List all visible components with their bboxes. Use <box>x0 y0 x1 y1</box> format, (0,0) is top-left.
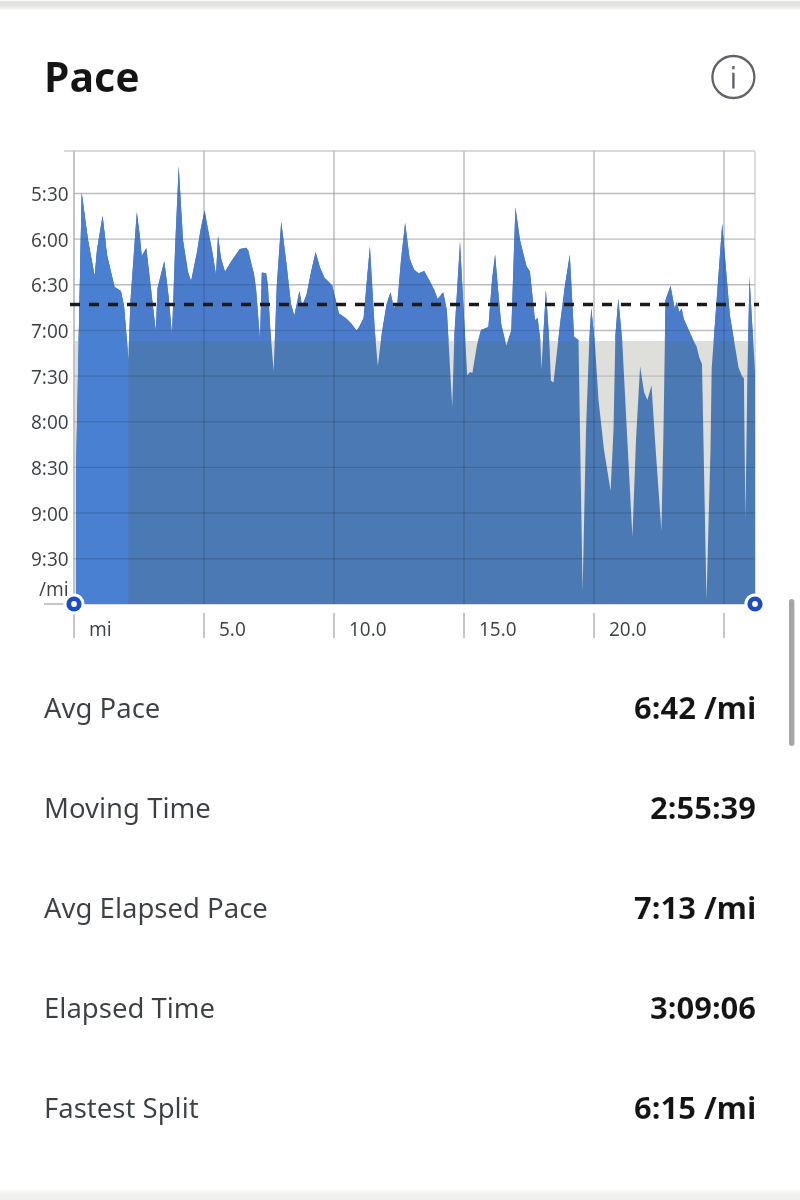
staticText: 10.0 <box>349 616 387 642</box>
staticText: Avg Elapsed Pace <box>44 889 268 926</box>
staticText: Fastest Split <box>44 1089 199 1126</box>
staticText: 9:30 <box>31 546 69 572</box>
staticText: 8:00 <box>31 409 69 435</box>
staticText: Moving Time <box>44 789 211 826</box>
staticText: 7:00 <box>31 318 69 344</box>
staticText: 3:09:06 <box>650 986 757 1028</box>
staticText: 5:30 <box>31 181 69 207</box>
button[interactable]: Avg Pace <box>0 657 800 757</box>
staticText: 5.0 <box>219 616 246 642</box>
button[interactable]: Information <box>706 50 761 105</box>
staticText: 6:30 <box>31 272 69 298</box>
staticText: 6:15 /mi <box>634 1086 757 1128</box>
staticText: 6:42 /mi <box>634 686 757 728</box>
staticText: mi <box>89 616 112 642</box>
button[interactable]: Moving Time <box>0 757 800 857</box>
staticText: 2:55:39 <box>650 786 757 828</box>
staticText: 6:00 <box>31 227 69 253</box>
button[interactable]: Elapsed Time <box>0 957 800 1057</box>
staticText: 7:30 <box>31 364 69 390</box>
button[interactable]: Avg Elapsed Pace <box>0 857 800 957</box>
staticText: 8:30 <box>31 455 69 481</box>
staticText: Pace <box>44 48 140 104</box>
staticText: 7:13 /mi <box>634 886 757 928</box>
staticText: 15.0 <box>479 616 517 642</box>
staticText: 9:00 <box>31 501 69 527</box>
button[interactable]: Fastest Split <box>0 1057 800 1157</box>
staticText: Avg Pace <box>44 689 161 726</box>
staticText: /mi <box>39 576 69 602</box>
staticText: 20.0 <box>609 616 647 642</box>
staticText: Elapsed Time <box>44 989 216 1026</box>
